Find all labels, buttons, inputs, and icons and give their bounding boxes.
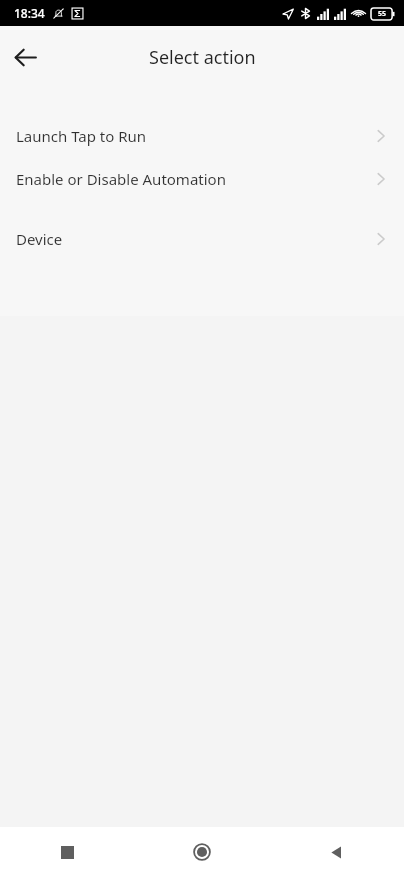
staticText: 18:34 xyxy=(14,5,45,21)
staticText: Select action xyxy=(149,45,256,70)
staticText: Launch Tap to Run xyxy=(16,126,374,146)
staticText: Enable or Disable Automation xyxy=(16,169,374,189)
button[interactable]: Launch Tap to Run xyxy=(0,122,404,149)
button[interactable]: Enable or Disable Automation xyxy=(0,149,404,209)
button[interactable]: Device xyxy=(0,209,404,269)
button[interactable]: Recents xyxy=(0,827,134,877)
button[interactable]: Back xyxy=(269,827,404,877)
staticText: Device xyxy=(16,229,374,249)
staticText: 55 xyxy=(378,9,387,19)
button[interactable]: Home xyxy=(134,827,269,877)
button[interactable]: Back xyxy=(5,37,45,77)
